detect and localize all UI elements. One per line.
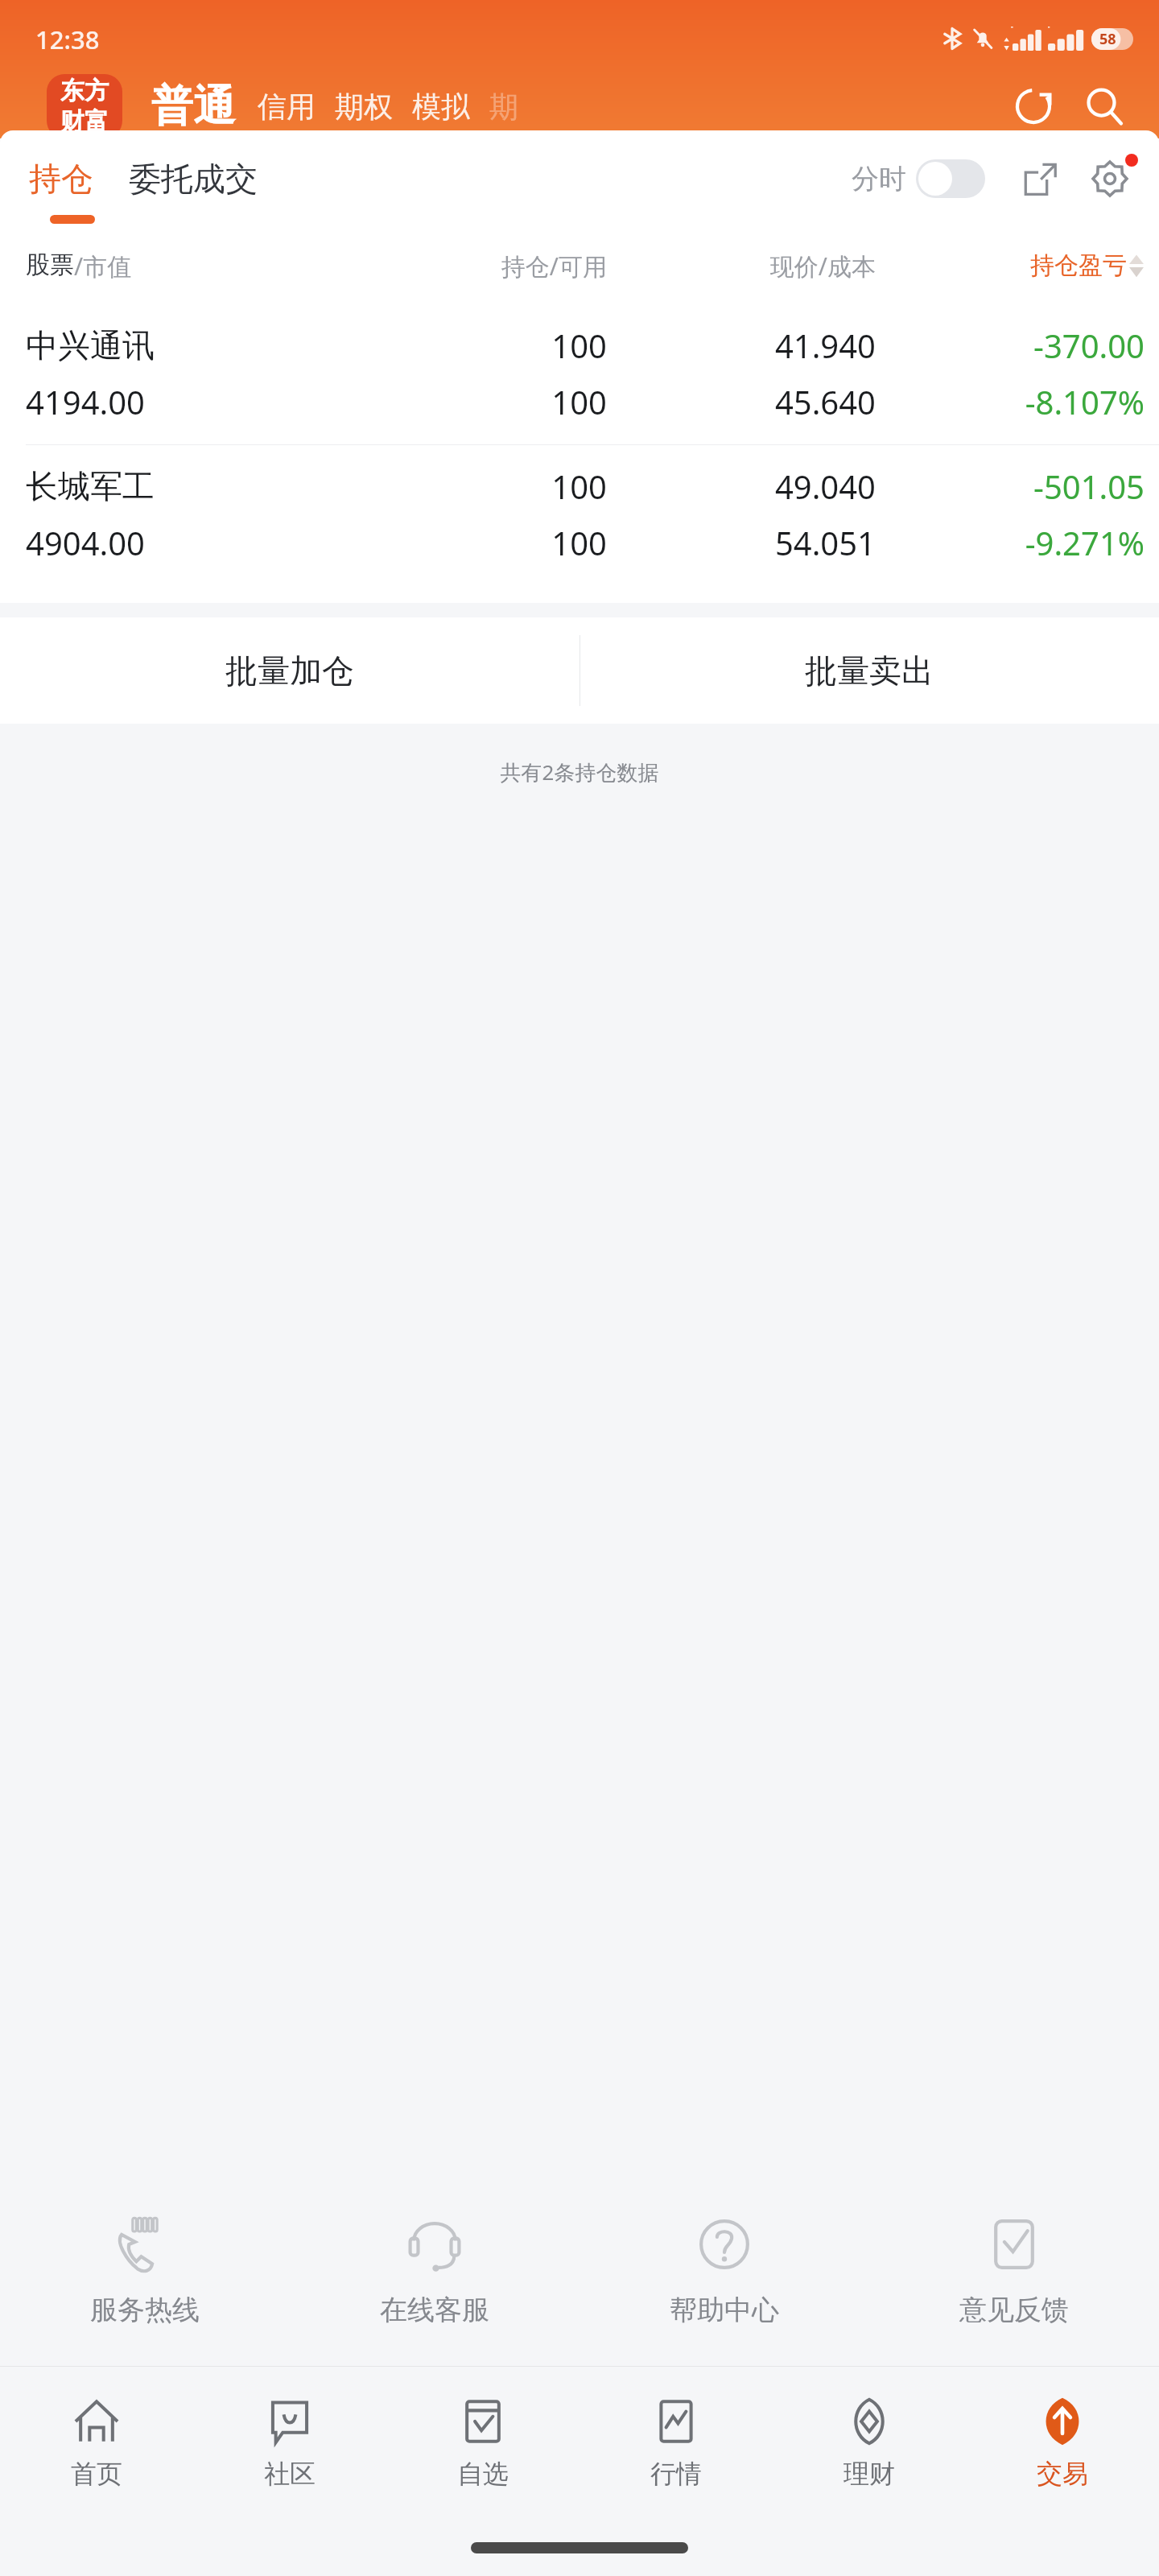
staticText: -8.107% bbox=[876, 380, 1145, 423]
staticText: 首页 bbox=[71, 2458, 122, 2490]
button[interactable]: 普通 bbox=[151, 80, 235, 133]
button[interactable]: 交易 bbox=[966, 2367, 1159, 2520]
staticText: 12:38 bbox=[35, 23, 100, 56]
button[interactable]: 帮助中心 bbox=[579, 2194, 869, 2347]
staticText: 100 bbox=[361, 521, 607, 564]
staticText: 财富 bbox=[60, 106, 109, 137]
staticText: 持仓/可用 bbox=[361, 250, 607, 283]
button[interactable]: 持仓盈亏 bbox=[876, 250, 1145, 281]
staticText: 在线客服 bbox=[380, 2293, 489, 2327]
staticText: 行情 bbox=[650, 2458, 702, 2490]
staticText: 100 bbox=[361, 464, 607, 508]
button[interactable]: 在线客服 bbox=[290, 2194, 579, 2347]
staticText: 批量加仓 bbox=[225, 650, 354, 691]
staticText: 持仓盈亏 bbox=[1030, 250, 1127, 281]
staticText: 58 bbox=[1099, 29, 1116, 49]
button[interactable]: Search bbox=[1074, 76, 1135, 137]
staticText: 社区 bbox=[264, 2458, 316, 2490]
staticText: -501.05 bbox=[876, 464, 1145, 508]
button[interactable]: Settings bbox=[1083, 152, 1136, 205]
button[interactable]: Refresh bbox=[1003, 76, 1064, 137]
staticText: 交易 bbox=[1037, 2458, 1088, 2490]
staticText: 4904.00 bbox=[26, 521, 361, 564]
button[interactable]: 信用 bbox=[258, 89, 316, 125]
staticText: 意见反馈 bbox=[959, 2293, 1069, 2327]
button[interactable]: 理财 bbox=[773, 2367, 966, 2520]
staticText: 批量卖出 bbox=[805, 650, 934, 691]
staticText: 100 bbox=[361, 380, 607, 423]
staticText: 41.940 bbox=[607, 324, 876, 367]
button[interactable]: 分时 bbox=[852, 159, 985, 198]
staticText: /市值 bbox=[74, 250, 132, 283]
button[interactable]: 持仓 bbox=[29, 159, 93, 199]
staticText: 帮助中心 bbox=[670, 2293, 779, 2327]
button[interactable]: 社区 bbox=[193, 2367, 386, 2520]
staticText: 4194.00 bbox=[26, 380, 361, 423]
button[interactable]: 长城军工 bbox=[0, 445, 1159, 585]
staticText: -9.271% bbox=[876, 521, 1145, 564]
staticText: 东方 bbox=[60, 76, 109, 106]
staticText: 100 bbox=[361, 324, 607, 367]
button[interactable]: 期 bbox=[489, 89, 518, 125]
button[interactable]: Share bbox=[1013, 152, 1066, 205]
staticText: 54.051 bbox=[607, 521, 876, 564]
button[interactable]: 服务热线 bbox=[0, 2194, 290, 2347]
staticText: 分时 bbox=[852, 162, 906, 196]
staticText: 自选 bbox=[457, 2458, 509, 2490]
staticText: 中兴通讯 bbox=[26, 325, 361, 365]
button[interactable]: 期权 bbox=[335, 89, 393, 125]
staticText: 股票 bbox=[26, 250, 74, 280]
button[interactable]: 批量加仓 bbox=[0, 617, 579, 724]
staticText: 共有2条持仓数据 bbox=[0, 758, 1159, 786]
button[interactable]: 行情 bbox=[579, 2367, 773, 2520]
button[interactable]: 自选 bbox=[386, 2367, 579, 2520]
button[interactable]: 委托成交 bbox=[129, 159, 258, 199]
staticText: 持仓 bbox=[29, 159, 93, 199]
button[interactable]: 模拟 bbox=[412, 89, 470, 125]
staticText: -370.00 bbox=[876, 324, 1145, 367]
button[interactable]: 东方财富 bbox=[47, 74, 122, 138]
staticText: 49.040 bbox=[607, 464, 876, 508]
button[interactable]: 中兴通讯 bbox=[0, 304, 1159, 444]
staticText: 长城军工 bbox=[26, 466, 361, 506]
staticText: 理财 bbox=[843, 2458, 895, 2490]
button[interactable]: 首页 bbox=[0, 2367, 193, 2520]
staticText: 现价/成本 bbox=[607, 250, 876, 283]
button[interactable]: 意见反馈 bbox=[869, 2194, 1159, 2347]
button[interactable]: 批量卖出 bbox=[579, 617, 1159, 724]
staticText: 服务热线 bbox=[90, 2293, 200, 2327]
staticText: 45.640 bbox=[607, 380, 876, 423]
